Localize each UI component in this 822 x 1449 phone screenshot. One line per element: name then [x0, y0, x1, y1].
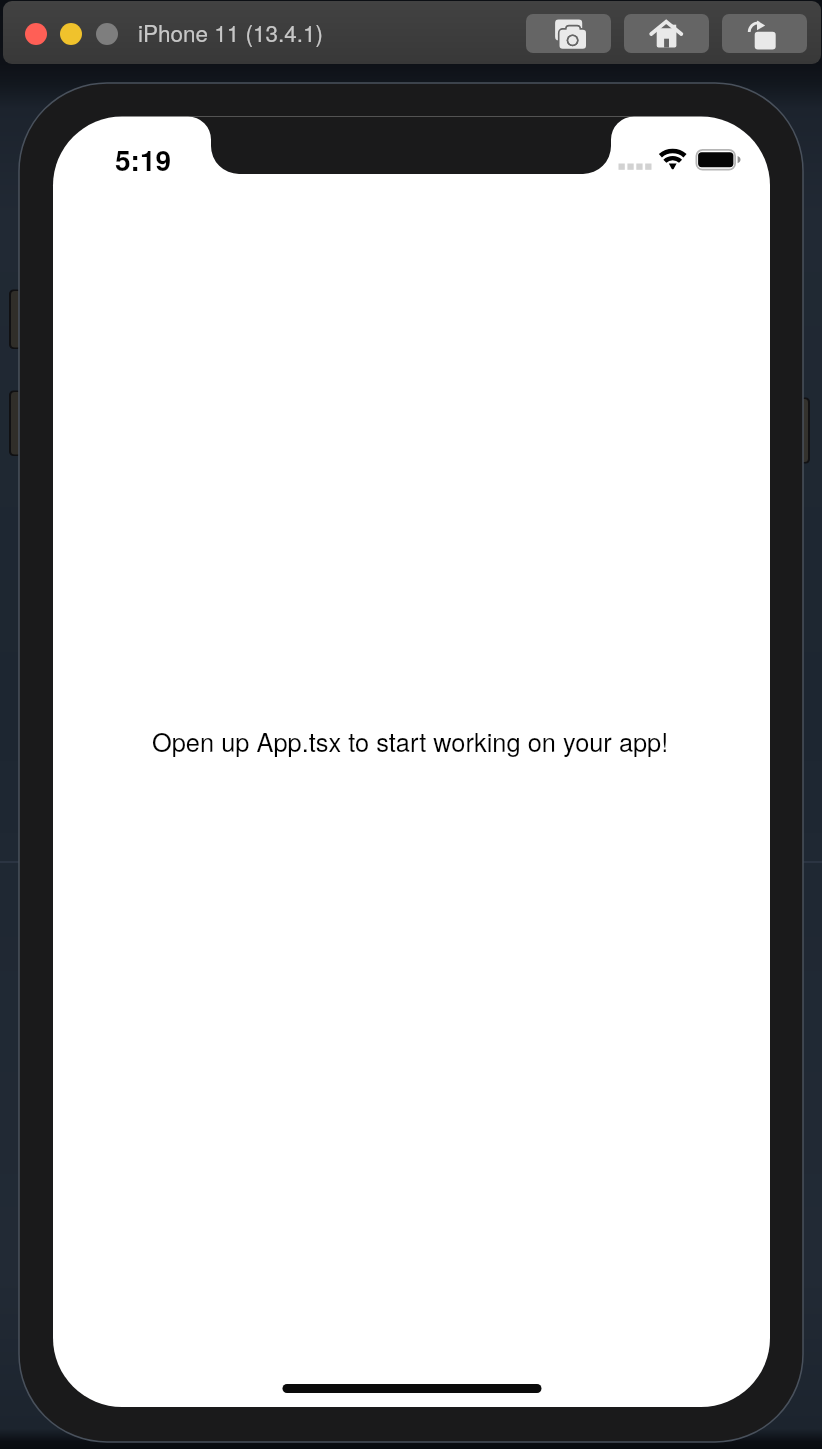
button[interactable]: Zoom window: [96, 23, 118, 45]
button[interactable]: Rotate device: [722, 14, 807, 53]
staticText: iPhone 11 (13.4.1): [138, 16, 324, 48]
button[interactable]: Take screenshot: [526, 14, 611, 53]
button[interactable]: Home: [624, 14, 709, 53]
staticText: Open up App.tsx to start working on your…: [152, 723, 669, 759]
staticText: 5:19: [115, 139, 172, 179]
button[interactable]: Minimize window: [60, 23, 82, 45]
button[interactable]: Close window: [25, 23, 47, 45]
